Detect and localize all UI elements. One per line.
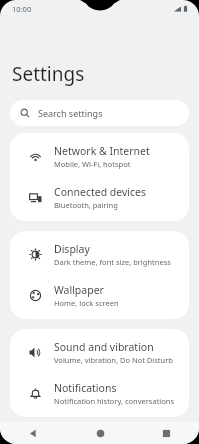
button[interactable]: Network & Internet — [10, 136, 189, 177]
staticText: Sound and vibration — [54, 340, 154, 354]
button[interactable]: Wallpaper — [10, 275, 189, 316]
staticText: Wallpaper — [54, 283, 104, 297]
button[interactable]: Home — [67, 422, 133, 444]
staticText: Dark theme, font size, brightness — [54, 257, 171, 267]
staticText: Connected devices — [54, 185, 147, 199]
button[interactable]: Recent apps — [133, 422, 199, 444]
staticText: Settings — [12, 61, 85, 87]
staticText: Bluetooth, pairing — [54, 200, 118, 210]
staticText: Network & Internet — [54, 144, 150, 158]
button[interactable]: Battery — [10, 430, 189, 441]
button[interactable]: Connected devices — [10, 177, 189, 218]
staticText: Notification history, conversations — [54, 396, 175, 406]
button[interactable]: Sound and vibration — [10, 332, 189, 373]
staticText: 10:00 — [12, 4, 32, 14]
staticText: Home, lock screen — [54, 298, 119, 308]
button[interactable]: Back — [0, 422, 67, 444]
staticText: Notifications — [54, 381, 117, 395]
staticText: Volume, vibration, Do Not Disturb — [54, 355, 173, 365]
staticText: Display — [54, 242, 90, 256]
button[interactable]: Search settings — [10, 100, 189, 126]
staticText: Mobile, Wi-Fi, hotspot — [54, 159, 131, 169]
button[interactable]: Display — [10, 234, 189, 275]
staticText: Search settings — [38, 107, 103, 119]
button[interactable]: Notifications — [10, 373, 189, 414]
